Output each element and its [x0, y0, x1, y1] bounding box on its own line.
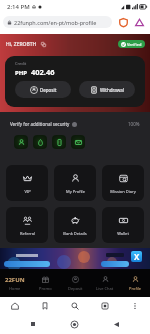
button[interactable]: Email verified — [71, 135, 85, 149]
button[interactable]: Account verified — [14, 135, 28, 149]
button[interactable]: Profile — [120, 269, 150, 297]
button[interactable]: Phone verified — [52, 135, 66, 149]
button[interactable]: Live Chat — [90, 269, 120, 297]
button[interactable]: VIP — [6, 165, 48, 201]
staticText: Home — [9, 286, 21, 291]
staticText: Referral — [20, 231, 35, 236]
button[interactable]: Promo — [30, 269, 60, 297]
staticText: Promo — [39, 286, 52, 291]
button[interactable]: Promotion banner — [0, 248, 150, 269]
staticText: Deposit — [40, 87, 57, 93]
button[interactable]: Referral — [6, 207, 48, 243]
button[interactable]: Brave Rewards — [133, 16, 146, 28]
button[interactable]: Deposit — [15, 81, 71, 98]
button[interactable]: Back — [108, 316, 124, 332]
staticText: Wallet — [117, 231, 129, 236]
staticText: VIP — [24, 189, 31, 194]
staticText: X — [134, 251, 140, 262]
staticText: PHP — [15, 69, 28, 77]
button[interactable]: My Profile — [54, 165, 96, 201]
button[interactable]: Withdrawal — [79, 81, 135, 98]
button[interactable]: Wallet — [102, 207, 144, 243]
staticText: Live Chat — [96, 286, 114, 291]
staticText: Verified — [127, 42, 142, 47]
button[interactable]: Recents — [25, 316, 41, 332]
staticText: Profile — [129, 286, 142, 291]
button[interactable]: Verified — [118, 40, 145, 48]
button[interactable]: Home — [0, 297, 30, 314]
staticText: Hi, ZEROBTH — [6, 41, 37, 48]
button[interactable]: 22funph.com/en-pt/mob-profile — [3, 16, 112, 28]
staticText: 2:14 PM — [7, 3, 30, 11]
button[interactable]: Copy username — [40, 41, 46, 47]
button[interactable]: Deposit — [60, 269, 90, 297]
button[interactable]: More options — [120, 297, 150, 314]
staticText: Mission Diary — [110, 189, 136, 194]
button[interactable]: Bookmarks — [30, 297, 60, 314]
staticText: 22FUN — [5, 276, 25, 284]
staticText: 22funph.com/en-pt/mob-profile — [14, 19, 97, 26]
staticText: Deposit — [68, 286, 83, 291]
button[interactable]: Brave Shields — [117, 16, 130, 28]
button[interactable]: Home — [66, 316, 82, 332]
button[interactable]: Identity verified — [33, 135, 47, 149]
button[interactable]: 22FUN — [0, 269, 30, 297]
staticText: Verify for additional security — [10, 121, 70, 127]
staticText: Credit — [15, 61, 27, 66]
staticText: Bank Details — [63, 231, 87, 236]
staticText: My Profile — [66, 189, 85, 194]
button[interactable]: Search — [60, 297, 90, 314]
staticText: Withdrawal — [100, 87, 125, 93]
button[interactable]: Bank Details — [54, 207, 96, 243]
button[interactable]: Mission Diary — [102, 165, 144, 201]
staticText: 402.46 — [31, 67, 55, 77]
staticText: 100% — [128, 121, 140, 127]
button[interactable]: Tabs — [90, 297, 120, 314]
